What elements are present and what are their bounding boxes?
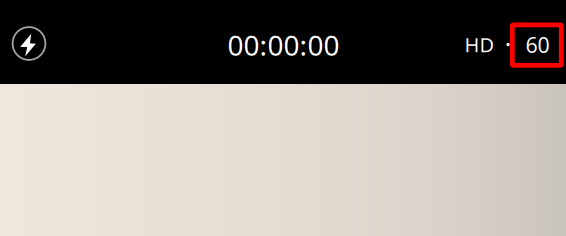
staticText: 00:00:00 [227,26,339,64]
button[interactable]: Flash [7,21,51,65]
staticText: 60 [526,31,550,59]
button[interactable]: HD [459,24,499,64]
staticText: HD [464,31,494,58]
button[interactable]: 60 [518,25,558,65]
